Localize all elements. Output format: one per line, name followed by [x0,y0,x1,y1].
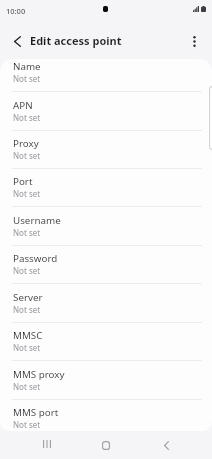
staticText: MMSC [13,329,43,342]
staticText: Not set [13,188,41,199]
staticText: Not set [13,419,41,430]
staticText: Not set [13,381,41,392]
button[interactable]: Name [0,59,212,92]
button[interactable]: More options [181,28,207,54]
staticText: Name [13,60,41,73]
staticText: Not set [13,342,41,353]
button[interactable]: Password [0,246,212,284]
button[interactable]: APN [0,93,212,131]
button[interactable]: MMS port [0,400,212,431]
button[interactable]: MMS proxy [0,362,212,400]
button[interactable]: Username [0,208,212,246]
button[interactable]: Proxy [0,131,212,169]
button[interactable]: Port [0,169,212,207]
staticText: Not set [13,150,41,161]
button[interactable]: MMSC [0,323,212,361]
staticText: Username [13,214,61,227]
staticText: Not set [13,304,41,315]
staticText: Not set [13,227,41,238]
staticText: 10:00 [6,6,26,16]
staticText: Server [13,291,43,304]
button[interactable]: Back [152,431,180,459]
staticText: Password [13,252,58,265]
button[interactable]: Home [92,431,120,459]
staticText: APN [13,99,33,112]
staticText: Not set [13,112,41,123]
staticText: MMS proxy [13,368,65,381]
staticText: MMS port [13,406,59,419]
staticText: Not set [13,265,41,276]
button[interactable]: Recent apps [33,430,61,458]
button[interactable]: Navigate up [4,28,30,54]
staticText: Port [13,175,33,188]
staticText: Edit access point [30,33,122,48]
staticText: Not set [13,73,41,84]
button[interactable]: Server [0,285,212,323]
staticText: Proxy [13,137,39,150]
